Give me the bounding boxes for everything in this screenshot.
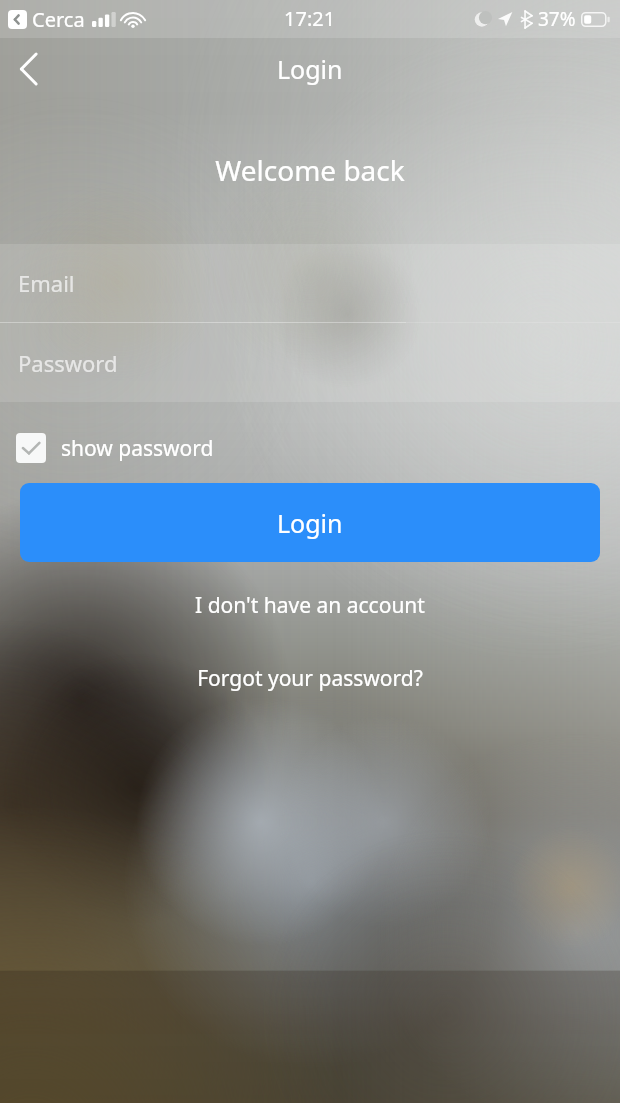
staticText: Login xyxy=(277,506,343,540)
button[interactable]: Login xyxy=(20,483,600,562)
staticText: Email xyxy=(18,268,75,298)
staticText: 37% xyxy=(538,6,576,32)
staticText: I don't have an account xyxy=(195,591,425,620)
staticText: Password xyxy=(18,348,118,378)
staticText: Cerca xyxy=(32,6,85,33)
button[interactable]: Password xyxy=(0,323,620,402)
button[interactable]: I don't have an account xyxy=(0,584,620,626)
button[interactable]: show password xyxy=(16,428,214,468)
staticText: 17:21 xyxy=(284,5,336,32)
staticText: show password xyxy=(61,434,214,463)
staticText: Login xyxy=(277,52,343,86)
button[interactable]: Back xyxy=(0,41,56,97)
button[interactable]: Email xyxy=(0,244,620,322)
staticText: Forgot your password? xyxy=(197,664,423,693)
button[interactable]: Forgot your password? xyxy=(0,657,620,699)
staticText: Welcome back xyxy=(0,151,620,189)
